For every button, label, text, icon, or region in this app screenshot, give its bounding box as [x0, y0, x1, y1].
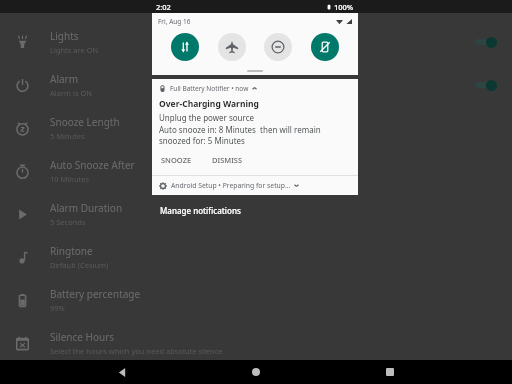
button[interactable]: Auto Snooze After [0, 149, 512, 192]
staticText: Over-Charging Warning [159, 98, 259, 110]
button[interactable]: Battery percentage [0, 278, 512, 321]
button[interactable]: Android Setup • Preparing for setup... [152, 176, 358, 195]
button[interactable]: Alarm [0, 63, 512, 106]
button[interactable]: Back [110, 360, 134, 384]
staticText: 5 Seconds [50, 217, 86, 227]
staticText: Auto snooze in: 8 Minutes then will rema… [159, 124, 351, 146]
staticText: Default (Cesium) [50, 260, 109, 270]
button[interactable]: Airplane mode [218, 33, 246, 61]
button[interactable]: Ringtone [0, 235, 512, 278]
staticText: Ringtone [50, 244, 93, 258]
staticText: Alarm [50, 72, 79, 86]
staticText: 99% [50, 303, 65, 313]
button[interactable]: Mobile data [171, 33, 199, 61]
button[interactable]: Home [244, 360, 268, 384]
staticText: Battery percentage [50, 287, 141, 301]
button[interactable]: Toggle [472, 77, 502, 93]
staticText: Select the hours which you need absolute… [50, 346, 223, 356]
button[interactable]: SNOOZE [159, 153, 194, 167]
staticText: SNOOZE [161, 155, 192, 165]
button[interactable]: Snooze Length [0, 106, 512, 149]
button[interactable]: Auto rotate [311, 33, 339, 61]
button[interactable]: Recent apps [378, 360, 402, 384]
button[interactable]: Alarm Duration [0, 192, 512, 235]
button[interactable]: Manage notifications [152, 203, 241, 218]
button[interactable]: Silence On "Do Not Disturb" mode [0, 364, 512, 384]
button[interactable]: Do Not Disturb [264, 33, 292, 61]
button[interactable]: Toggle [472, 34, 502, 50]
button[interactable]: Full Battery Notifier • now [152, 79, 358, 175]
button[interactable]: DISMISS [210, 153, 245, 167]
button[interactable]: Lights [0, 20, 512, 63]
staticText: Silence Hours [50, 330, 115, 344]
staticText: Unplug the power source [159, 112, 255, 123]
staticText: Alarm Duration [50, 201, 123, 215]
button[interactable]: Silence Hours [0, 321, 512, 364]
staticText: Manage notifications [160, 205, 241, 216]
staticText: 2:02 [156, 2, 171, 12]
staticText: Snooze Length [50, 115, 120, 129]
staticText: Android Setup • Preparing for setup... [171, 181, 291, 190]
staticText: Fri, Aug 16 [158, 17, 191, 26]
staticText: 10 Minutes [50, 174, 90, 184]
staticText: Alarm is ON [50, 88, 93, 98]
staticText: Lights [50, 29, 79, 43]
staticText: 100% [334, 2, 354, 12]
staticText: Auto Snooze After [50, 158, 135, 172]
staticText: 5 Minutes [50, 131, 85, 141]
staticText: Full Battery Notifier • now [170, 84, 249, 93]
staticText: DISMISS [212, 155, 243, 165]
staticText: Lights are ON [50, 45, 99, 55]
staticText: Silence On "Do Not Disturb" mode [50, 364, 211, 378]
